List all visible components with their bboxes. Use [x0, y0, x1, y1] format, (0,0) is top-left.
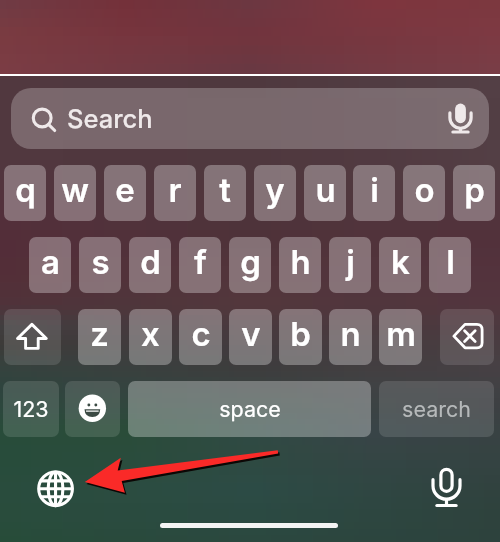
staticText: w: [61, 170, 89, 210]
button[interactable]: s: [79, 237, 121, 293]
button[interactable]: j: [329, 237, 371, 293]
staticText: q: [15, 170, 36, 210]
button[interactable]: n: [329, 309, 372, 365]
button[interactable]: t: [204, 165, 246, 221]
button[interactable]: l: [429, 237, 471, 293]
staticText: n: [340, 314, 361, 354]
button[interactable]: z: [78, 309, 121, 365]
staticText: y: [265, 170, 285, 210]
button[interactable]: f: [179, 237, 221, 293]
staticText: v: [241, 314, 261, 354]
staticText: m: [386, 314, 416, 354]
button[interactable]: search: [379, 381, 494, 437]
staticText: h: [290, 242, 311, 282]
button[interactable]: o: [403, 165, 445, 221]
button[interactable]: q: [4, 165, 46, 221]
staticText: i: [370, 170, 379, 210]
staticText: r: [168, 170, 182, 210]
staticText: s: [91, 242, 110, 282]
staticText: t: [219, 170, 231, 210]
staticText: b: [290, 314, 311, 354]
staticText: d: [140, 242, 161, 282]
button[interactable]: Search: [11, 88, 489, 149]
button[interactable]: u: [304, 165, 346, 221]
button[interactable]: r: [154, 165, 196, 221]
button[interactable]: w: [54, 165, 96, 221]
staticText: z: [90, 314, 109, 354]
button[interactable]: Shift: [4, 309, 61, 365]
button[interactable]: Dictation: [424, 462, 470, 508]
staticText: g: [240, 242, 261, 282]
staticText: Search: [67, 103, 153, 134]
staticText: search: [402, 396, 471, 422]
staticText: k: [391, 242, 410, 282]
button[interactable]: k: [379, 237, 421, 293]
staticText: p: [464, 170, 485, 210]
button[interactable]: b: [279, 309, 322, 365]
staticText: space: [219, 396, 281, 422]
staticText: o: [414, 170, 435, 210]
button[interactable]: Emoji: [65, 381, 120, 437]
button[interactable]: v: [229, 309, 272, 365]
button[interactable]: 123: [3, 381, 59, 437]
button[interactable]: x: [129, 309, 172, 365]
button[interactable]: c: [179, 309, 222, 365]
staticText: c: [191, 314, 211, 354]
staticText: x: [141, 314, 160, 354]
staticText: f: [194, 242, 207, 282]
staticText: a: [41, 242, 60, 282]
button[interactable]: d: [129, 237, 171, 293]
button[interactable]: Voice search: [447, 97, 489, 141]
button[interactable]: h: [279, 237, 321, 293]
staticText: j: [346, 242, 355, 282]
staticText: u: [315, 170, 336, 210]
staticText: 123: [13, 396, 49, 422]
button[interactable]: e: [104, 165, 146, 221]
button[interactable]: a: [29, 237, 71, 293]
button[interactable]: i: [353, 165, 395, 221]
button[interactable]: m: [379, 309, 422, 365]
button[interactable]: y: [254, 165, 296, 221]
button[interactable]: Backspace: [440, 309, 494, 365]
button[interactable]: Switch keyboard: [31, 464, 80, 513]
button[interactable]: g: [229, 237, 271, 293]
staticText: l: [446, 242, 455, 282]
button[interactable]: space: [128, 381, 371, 437]
button[interactable]: p: [453, 165, 495, 221]
staticText: e: [115, 170, 135, 210]
